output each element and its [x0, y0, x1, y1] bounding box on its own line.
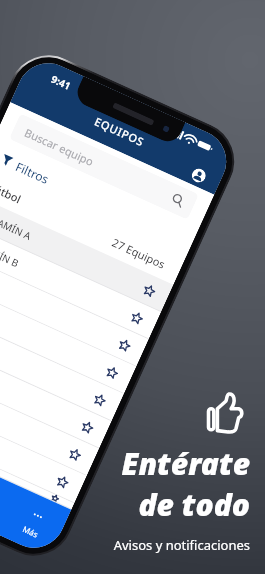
- staticText: Filtros: [13, 158, 52, 187]
- button[interactable]: Más: [0, 487, 71, 558]
- staticText: Más: [21, 523, 40, 540]
- button[interactable]: [0, 329, 111, 449]
- button[interactable]: Equipos: [0, 463, 20, 535]
- button[interactable]: Cuenta: [189, 166, 208, 185]
- button[interactable]: [0, 383, 87, 503]
- staticText: Fútbol: [0, 179, 24, 207]
- button[interactable]: [0, 356, 99, 476]
- staticText: Entérate: [121, 443, 250, 484]
- button[interactable]: BENJAMÍN A: [0, 192, 173, 312]
- button[interactable]: [0, 302, 124, 421]
- staticText: BENJAMÍN A: [0, 206, 33, 243]
- button[interactable]: [0, 247, 149, 367]
- button[interactable]: Filtros: [0, 139, 198, 257]
- button[interactable]: [0, 411, 74, 510]
- staticText: Avisos y notificaciones: [113, 536, 250, 554]
- button[interactable]: [0, 274, 136, 394]
- staticText: 9:41: [49, 72, 73, 93]
- staticText: Buscar equipo: [22, 125, 97, 169]
- staticText: 27 Equipos: [110, 235, 168, 272]
- staticText: EQUIPOS: [92, 114, 148, 150]
- staticText: de todo: [138, 484, 250, 525]
- button[interactable]: Buscar equipo: [9, 113, 199, 220]
- staticText: BENJAMÍN B: [0, 233, 21, 270]
- button[interactable]: BENJAMÍN B: [0, 220, 161, 339]
